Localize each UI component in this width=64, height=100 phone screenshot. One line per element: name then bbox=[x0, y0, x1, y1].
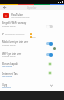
staticText: Ayarlar bbox=[27, 6, 37, 10]
staticText: WiFi'ye izin ver bbox=[2, 52, 22, 56]
staticText: Engelli WiFi varsay bbox=[2, 21, 27, 25]
button[interactable] bbox=[0, 61, 64, 70]
button[interactable] bbox=[0, 39, 64, 48]
staticText: Uyg bbox=[2, 83, 8, 87]
button[interactable] bbox=[0, 50, 64, 59]
staticText: YouTube bbox=[11, 13, 23, 17]
staticText: Sistemi kullan bbox=[2, 55, 16, 58]
button[interactable]: Allowed bbox=[48, 62, 52, 66]
staticText: ayar bbox=[32, 36, 36, 39]
button[interactable] bbox=[0, 81, 64, 90]
button[interactable]: Allowed bbox=[48, 71, 52, 75]
button[interactable]: Switch on bbox=[46, 52, 53, 57]
button[interactable] bbox=[0, 20, 64, 29]
staticText: Izin verildi bbox=[2, 65, 13, 68]
button[interactable]: Back bbox=[0, 5, 8, 10]
staticText: Ekran kapali bbox=[2, 62, 18, 66]
staticText: Sistemi kullan bbox=[2, 25, 16, 28]
button[interactable] bbox=[0, 11, 64, 19]
button[interactable]: Switch on bbox=[46, 41, 53, 46]
staticText: Izin verildi bbox=[2, 75, 13, 78]
staticText: Internet Tas bbox=[2, 72, 18, 76]
button[interactable]: Switch off bbox=[46, 24, 53, 29]
staticText: com.google.youtube bbox=[11, 16, 30, 19]
staticText: Sistemi kullan bbox=[2, 44, 16, 47]
staticText: Dokunun bbox=[2, 86, 12, 89]
button[interactable]: Expand bbox=[48, 82, 54, 88]
staticText: Engellenen uygulama bbox=[5, 33, 25, 36]
staticText: Mobil veriye izin ver bbox=[2, 40, 29, 44]
button[interactable] bbox=[0, 71, 64, 80]
